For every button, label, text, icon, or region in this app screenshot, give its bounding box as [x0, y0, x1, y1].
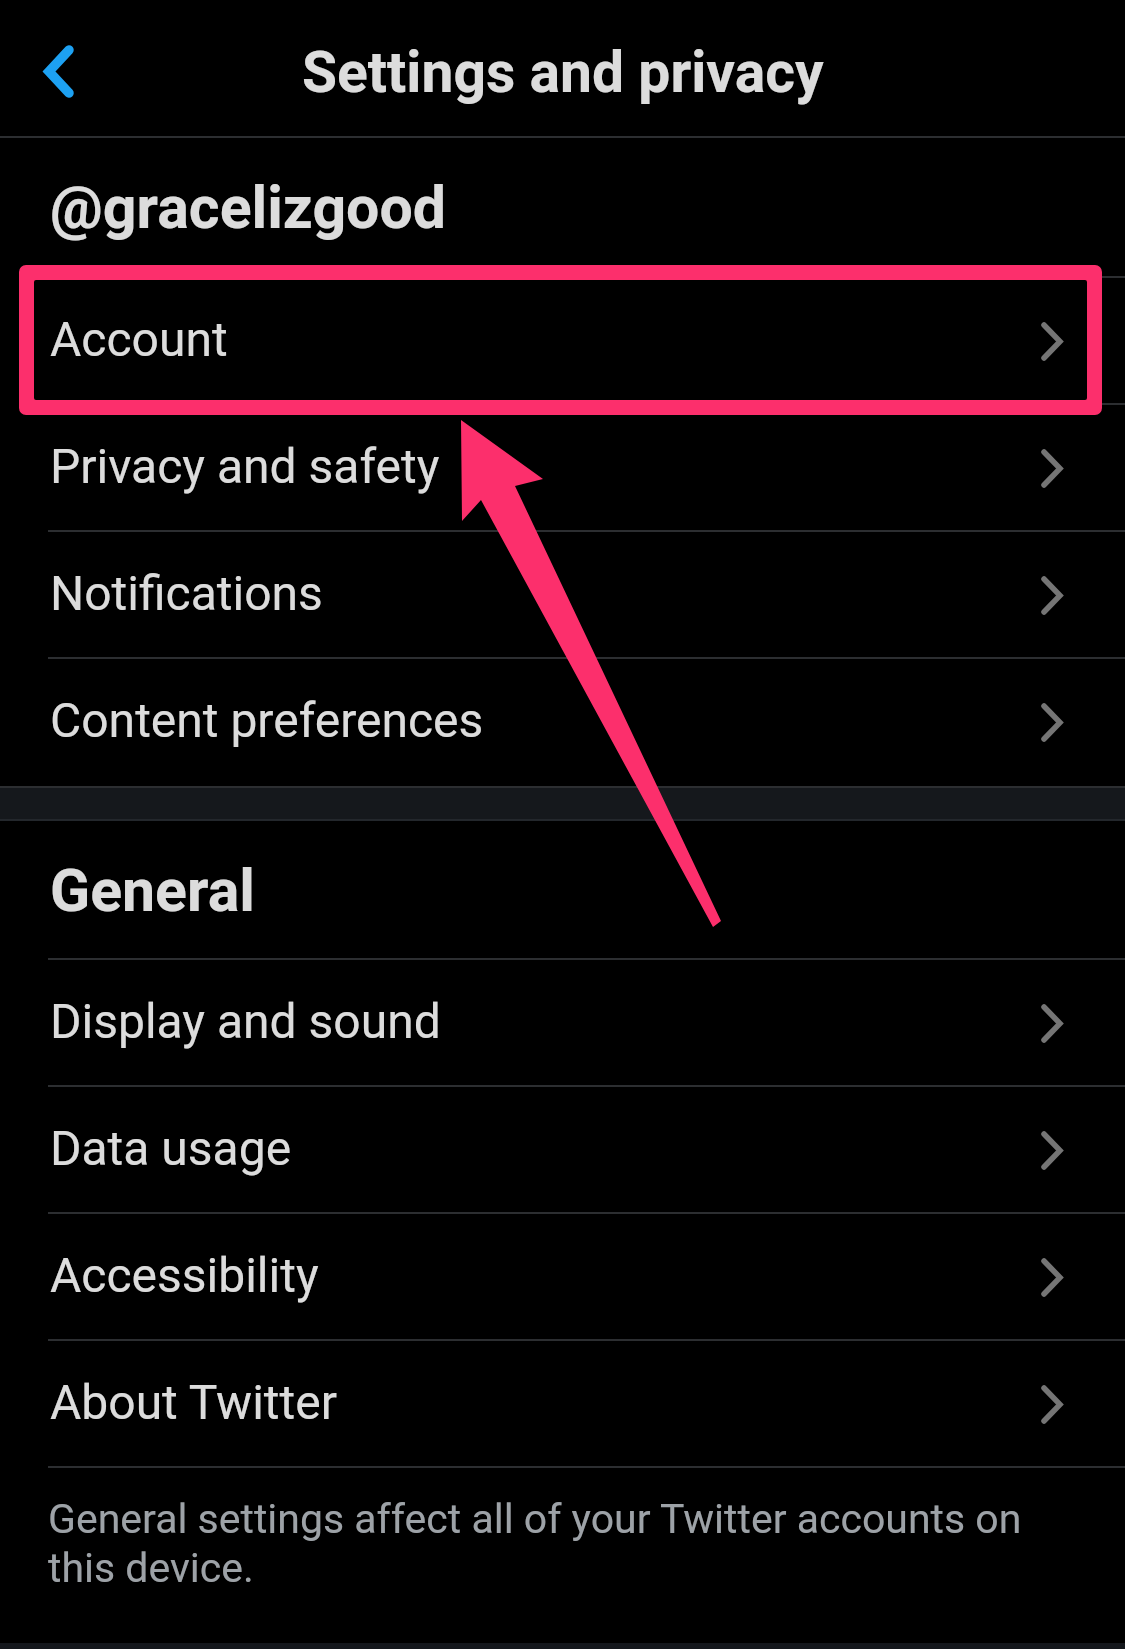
staticText: Account [50, 311, 228, 367]
staticText: General [50, 856, 255, 925]
staticText: Accessibility [50, 1247, 319, 1303]
staticText: About Twitter [50, 1374, 337, 1430]
staticText: Content preferences [50, 692, 484, 748]
button[interactable]: Content preferences [0, 659, 1125, 786]
staticText: Display and sound [50, 993, 441, 1049]
button[interactable]: Notifications [0, 532, 1125, 659]
staticText: General settings affect all of your Twit… [48, 1495, 1065, 1592]
button[interactable]: About Twitter [0, 1341, 1125, 1468]
staticText: Privacy and safety [50, 438, 440, 494]
staticText: Settings and privacy [302, 39, 824, 106]
staticText: @gracelizgood [50, 173, 447, 242]
button[interactable]: Display and sound [0, 960, 1125, 1087]
staticText: Notifications [50, 565, 323, 621]
button[interactable]: Account [0, 278, 1125, 405]
button[interactable]: Back [17, 27, 101, 111]
button[interactable]: Accessibility [0, 1214, 1125, 1341]
button[interactable]: Privacy and safety [0, 405, 1125, 532]
staticText: Data usage [50, 1120, 292, 1176]
button[interactable]: Data usage [0, 1087, 1125, 1214]
